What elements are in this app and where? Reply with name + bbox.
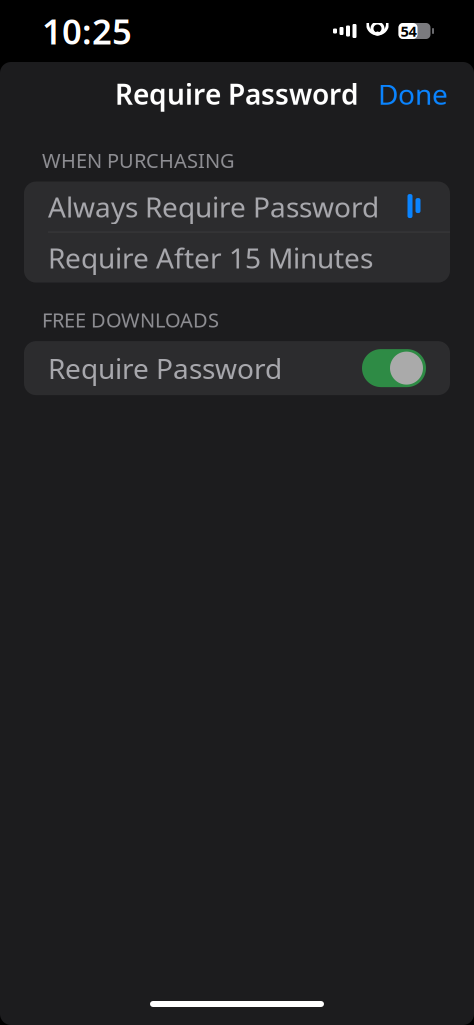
staticText: FREE DOWNLOADS xyxy=(42,307,219,333)
staticText: Always Require Password xyxy=(48,188,379,225)
staticText: Require Password xyxy=(115,75,359,113)
button[interactable]: Require Password xyxy=(24,341,450,395)
staticText: 54 xyxy=(400,21,416,41)
button[interactable]: Require After 15 Minutes xyxy=(24,233,450,283)
staticText: 10:25 xyxy=(42,8,132,54)
staticText: Done xyxy=(378,75,448,113)
button[interactable]: Done xyxy=(360,65,466,123)
staticText: Require After 15 Minutes xyxy=(48,239,373,276)
staticText: Require Password xyxy=(48,349,282,387)
staticText: WHEN PURCHASING xyxy=(42,147,235,174)
button[interactable]: Always Require Password xyxy=(24,182,450,232)
